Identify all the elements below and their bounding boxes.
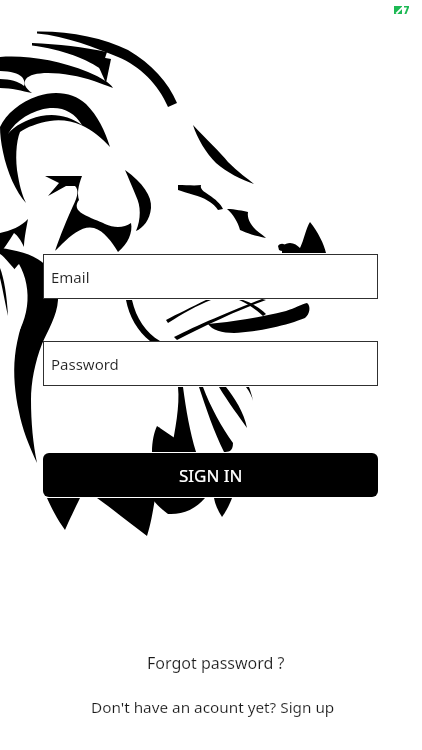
button[interactable]: Forgot password ? [147,652,285,674]
staticText: Password [51,354,119,374]
button[interactable]: SIGN IN [43,453,378,497]
button[interactable]: Password [43,341,378,386]
staticText: Email [51,267,90,287]
staticText: SIGN IN [179,464,243,487]
button[interactable]: Email [43,254,378,299]
button[interactable]: Don't have an acount yet? Sign up [91,697,335,718]
